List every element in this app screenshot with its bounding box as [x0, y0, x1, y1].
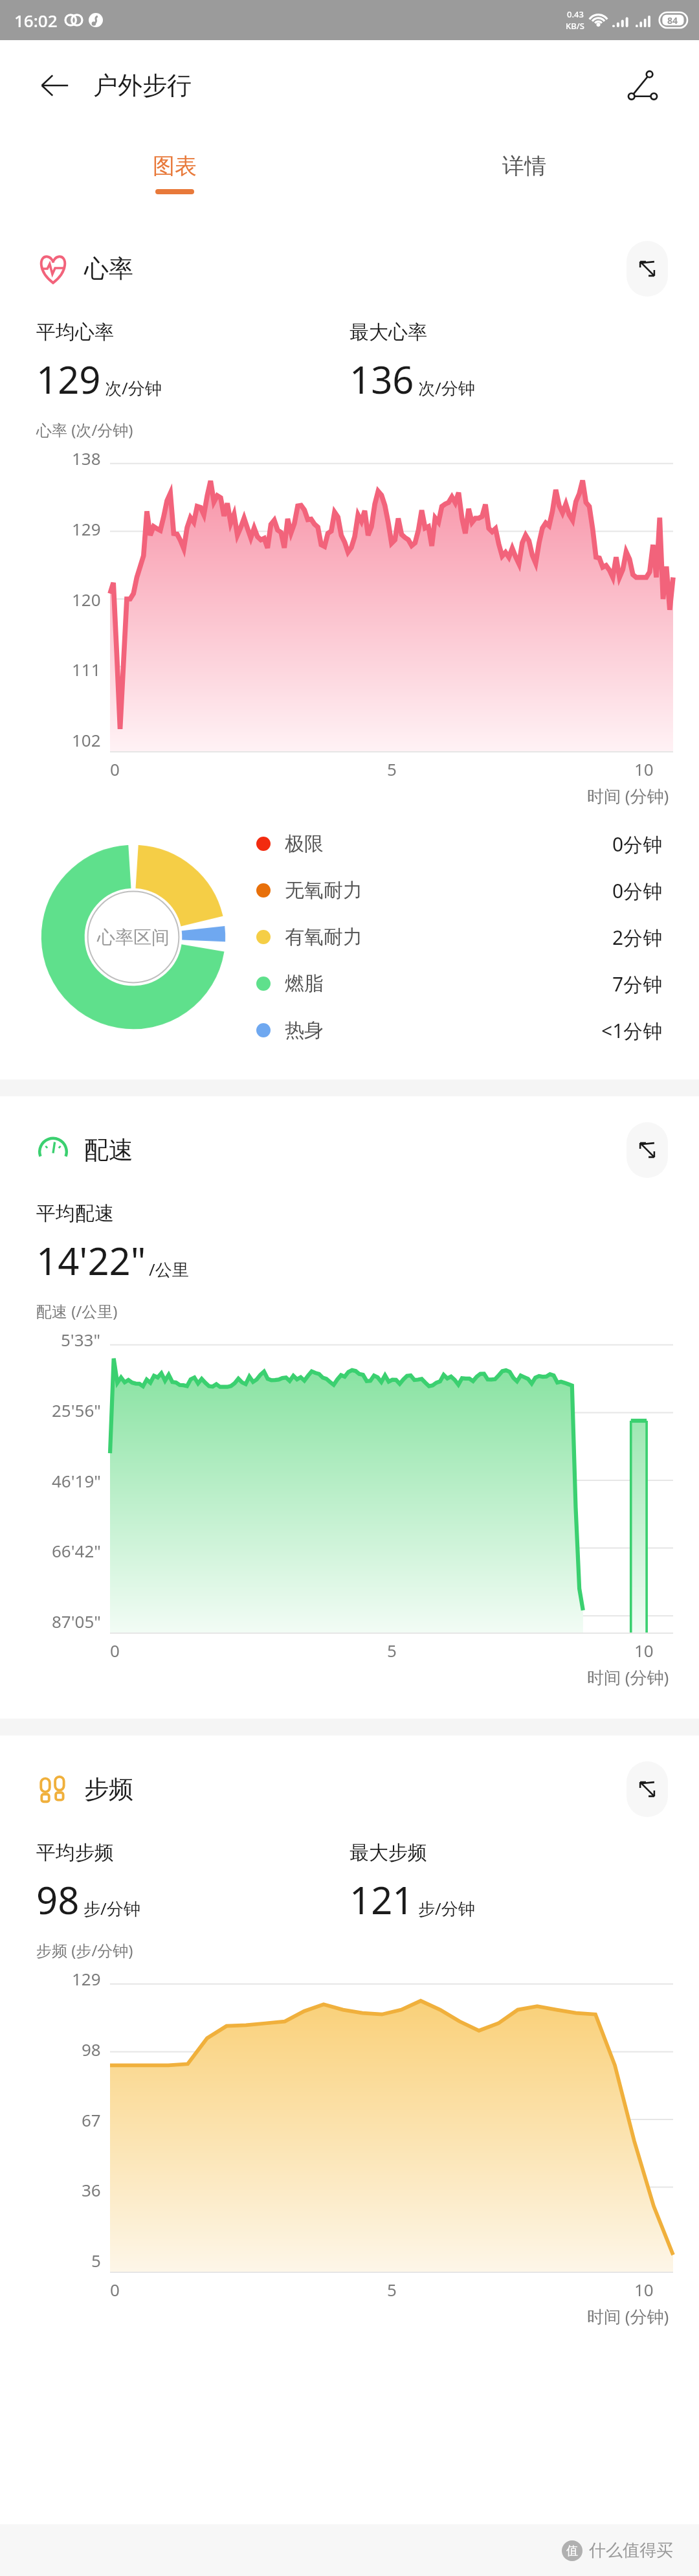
staticText: 配速 — [84, 1135, 133, 1166]
staticText: 129 — [72, 517, 101, 540]
staticText: 36 — [82, 2178, 101, 2201]
staticText: 步频 (步/分钟) — [36, 1939, 133, 1961]
staticText: 步/分钟 — [83, 1897, 140, 1920]
button[interactable]: 详情 — [349, 131, 699, 215]
staticText: 最大心率 — [349, 320, 427, 345]
button[interactable]: Expand chart — [627, 1122, 668, 1178]
staticText: 0 — [110, 2278, 120, 2301]
staticText: 平均心率 — [36, 320, 114, 345]
staticText: 时间 (分钟) — [587, 784, 669, 808]
staticText: 值 — [566, 2544, 578, 2559]
staticText: 步频 — [84, 1774, 133, 1805]
staticText: 0 — [110, 1639, 120, 1662]
staticText: 46'19" — [52, 1469, 101, 1492]
staticText: 平均配速 — [36, 1201, 114, 1226]
staticText: /公里 — [149, 1258, 189, 1281]
button[interactable]: Back — [31, 62, 78, 109]
staticText: <1分钟 — [601, 1017, 663, 1044]
staticText: 热身 — [285, 1018, 324, 1043]
staticText: 心率 — [84, 253, 133, 284]
button[interactable]: Expand chart — [627, 241, 668, 297]
staticText: 5 — [387, 2278, 397, 2301]
button[interactable]: Share — [617, 60, 668, 111]
staticText: 时间 (分钟) — [587, 1666, 669, 1689]
staticText: 129 — [72, 1967, 101, 1990]
staticText: 什么值得买 — [589, 2540, 673, 2561]
button[interactable]: 燃脂 — [256, 960, 663, 1007]
staticText: 5'33" — [61, 1328, 101, 1351]
staticText: 次/分钟 — [105, 376, 162, 400]
staticText: 67 — [82, 2108, 101, 2131]
staticText: 129 — [36, 354, 101, 405]
staticText: 详情 — [502, 152, 546, 180]
staticText: 66'42" — [52, 1539, 101, 1562]
staticText: 16:02 — [14, 9, 58, 32]
staticText: 84 — [667, 14, 678, 27]
staticText: 有氧耐力 — [285, 925, 362, 949]
staticText: 120 — [72, 588, 101, 611]
button[interactable]: 有氧耐力 — [256, 914, 663, 960]
staticText: 136 — [349, 354, 414, 405]
staticText: 14'22" — [36, 1235, 146, 1286]
staticText: 平均步频 — [36, 1840, 114, 1865]
staticText: 25'56" — [52, 1399, 101, 1421]
staticText: 0.43 — [567, 8, 584, 20]
staticText: 5 — [387, 1639, 397, 1662]
staticText: 102 — [72, 729, 101, 751]
staticText: 时间 (分钟) — [587, 2305, 669, 2328]
button[interactable]: 热身 — [256, 1007, 663, 1054]
staticText: 次/分钟 — [418, 376, 475, 400]
staticText: 最大步频 — [349, 1840, 427, 1865]
staticText: 燃脂 — [285, 971, 324, 996]
staticText: 10 — [634, 1639, 654, 1662]
staticText: 10 — [634, 758, 654, 780]
staticText: 0分钟 — [612, 877, 663, 904]
button[interactable]: 极限 — [256, 820, 663, 867]
staticText: 111 — [72, 658, 101, 681]
staticText: KB/S — [566, 20, 584, 32]
staticText: 0 — [110, 758, 120, 780]
staticText: 图表 — [153, 152, 197, 180]
staticText: 5 — [387, 758, 397, 780]
staticText: 98 — [82, 2038, 101, 2061]
staticText: 10 — [634, 2278, 654, 2301]
staticText: 138 — [72, 447, 101, 469]
button[interactable]: 图表 — [0, 131, 349, 215]
staticText: 心率区间 — [97, 926, 170, 949]
button[interactable]: Expand chart — [627, 1761, 668, 1817]
staticText: 87'05" — [52, 1610, 101, 1633]
staticText: 步/分钟 — [418, 1897, 475, 1920]
staticText: 121 — [349, 1874, 414, 1925]
button[interactable]: 无氧耐力 — [256, 867, 663, 914]
staticText: 98 — [36, 1874, 80, 1925]
staticText: 极限 — [285, 831, 324, 856]
staticText: 5 — [91, 2249, 101, 2272]
staticText: 无氧耐力 — [285, 878, 362, 903]
staticText: 0分钟 — [612, 831, 663, 857]
staticText: 配速 (/公里) — [36, 1300, 118, 1322]
staticText: 2分钟 — [612, 924, 663, 951]
staticText: 心率 (次/分钟) — [36, 419, 133, 440]
staticText: 7分钟 — [612, 971, 663, 997]
staticText: 户外步行 — [93, 70, 192, 101]
